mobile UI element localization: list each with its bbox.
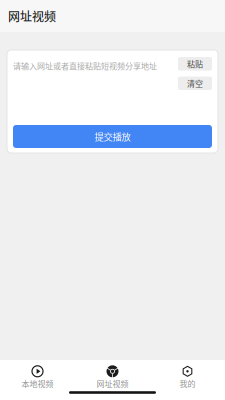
button[interactable]: 本地视频 [0, 363, 75, 391]
staticText: 清空 [187, 78, 203, 89]
staticText: 提交播放 [94, 130, 130, 143]
staticText: 我的 [179, 378, 195, 389]
staticText: 粘贴 [187, 58, 203, 69]
staticText: 请输入网址或者直接粘贴短视频分享地址 [13, 60, 157, 71]
staticText: 本地视频 [21, 378, 53, 389]
button[interactable]: 网址视频 [75, 363, 150, 391]
button[interactable]: 粘贴 [178, 57, 212, 70]
button[interactable]: 提交播放 [13, 125, 212, 148]
button[interactable]: 清空 [178, 76, 212, 90]
staticText: 网址视频 [96, 378, 128, 389]
button[interactable]: 我的 [150, 363, 225, 391]
staticText: 网址视频 [8, 7, 56, 24]
